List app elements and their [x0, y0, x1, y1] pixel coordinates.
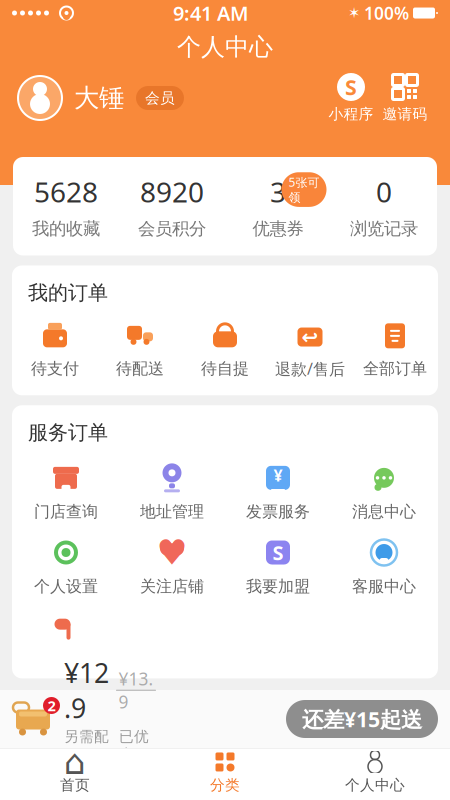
button[interactable]: 邀请码: [378, 73, 432, 123]
staticText: 100%: [364, 1, 409, 24]
staticText: 首页: [60, 776, 90, 794]
staticText: ↩: [301, 326, 318, 348]
button[interactable]: 分类: [150, 748, 300, 796]
button[interactable]: 还差¥15起送: [286, 700, 438, 738]
button[interactable]: S: [324, 73, 378, 123]
staticText: ¥: [273, 465, 282, 486]
staticText: 我的收藏: [32, 218, 100, 239]
button[interactable]: 5628: [13, 173, 119, 239]
staticText: 退款/售后: [275, 358, 345, 379]
button[interactable]: S: [225, 537, 331, 596]
staticText: S: [272, 539, 283, 566]
staticText: 8920: [140, 173, 204, 210]
button[interactable]: 待自提: [182, 322, 267, 378]
staticText: 2: [47, 696, 55, 715]
staticText: 我要加盟: [246, 576, 310, 596]
staticText: 服务订单: [28, 420, 108, 445]
staticText: 邀请码: [382, 105, 427, 123]
button[interactable]: ⌂: [0, 748, 150, 796]
staticText: 全部订单: [363, 359, 427, 378]
button[interactable]: ♥: [119, 537, 225, 596]
button[interactable]: 待支付: [12, 322, 97, 378]
staticText: 已优惠¥4.9: [119, 728, 149, 783]
staticText: 地址管理: [140, 502, 204, 522]
staticText: 会员: [145, 89, 175, 107]
staticText: 优惠券: [252, 218, 303, 239]
staticText: 门店查询: [34, 502, 98, 522]
staticText: ♥: [156, 533, 187, 572]
button[interactable]: 客服中心: [331, 537, 437, 596]
staticText: 大锤: [74, 82, 124, 113]
button[interactable]: ¥: [225, 463, 331, 522]
staticText: 个人中心: [345, 776, 405, 794]
staticText: 待支付: [31, 359, 79, 378]
staticText: 9:41 AM: [173, 0, 249, 26]
button[interactable]: 门店查询: [13, 463, 119, 522]
button[interactable]: 个人设置: [13, 537, 119, 596]
staticText: 另需配送费4元: [64, 728, 109, 783]
staticText: 浏览记录: [350, 218, 418, 239]
staticText: 发票服务: [246, 502, 310, 522]
button[interactable]: 0: [331, 173, 437, 239]
button[interactable]: 3: [225, 173, 331, 239]
staticText: ¥12.9: [64, 655, 109, 726]
staticText: 5张可领: [288, 174, 319, 205]
staticText: ⌂: [64, 742, 86, 782]
button[interactable]: [12, 612, 118, 672]
staticText: 个人设置: [34, 576, 98, 596]
staticText: S: [345, 73, 357, 101]
staticText: 5628: [34, 173, 98, 210]
staticText: ✶: [348, 5, 360, 21]
staticText: 客服中心: [352, 576, 416, 596]
button[interactable]: 待配送: [97, 322, 182, 378]
staticText: ¥13.9: [118, 667, 153, 713]
button[interactable]: 大锤: [18, 76, 184, 120]
staticText: 待自提: [201, 359, 249, 378]
staticText: 关注店铺: [140, 576, 204, 596]
staticText: 消息中心: [352, 502, 416, 522]
staticText: 会员积分: [138, 218, 206, 239]
button[interactable]: 8920: [119, 173, 225, 239]
staticText: 分类: [210, 776, 240, 794]
staticText: 待配送: [116, 359, 164, 378]
staticText: 我的订单: [28, 280, 108, 305]
button[interactable]: 地址管理: [119, 463, 225, 522]
button[interactable]: 个人中心: [300, 748, 450, 796]
button[interactable]: 全部订单: [352, 322, 437, 378]
staticText: 3: [270, 173, 286, 210]
staticText: 个人中心: [177, 32, 273, 62]
button[interactable]: ↩: [267, 321, 352, 379]
button[interactable]: 消息中心: [331, 463, 437, 522]
staticText: 0: [376, 173, 392, 210]
staticText: 还差¥15起送: [302, 705, 422, 733]
staticText: 小程序: [328, 105, 373, 123]
